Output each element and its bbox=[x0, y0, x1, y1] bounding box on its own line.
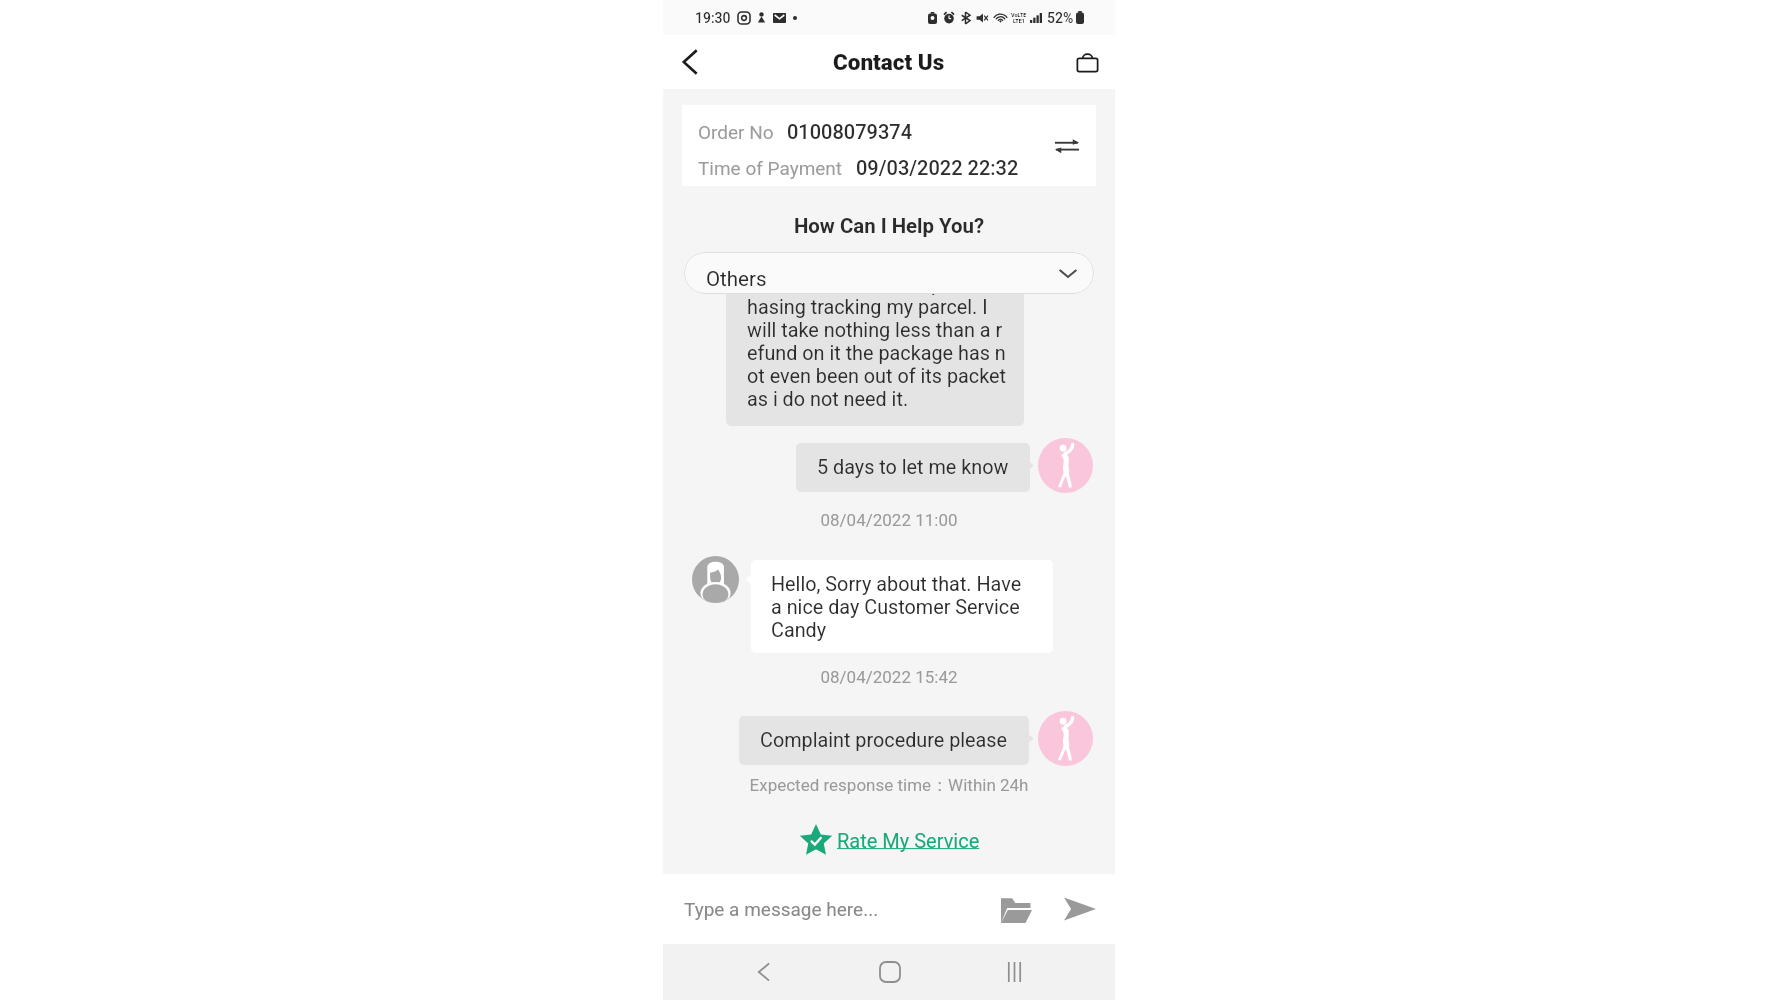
staticText: Type a message here... bbox=[684, 898, 879, 920]
staticText: 09/03/2022 22:32 bbox=[856, 156, 1019, 179]
button[interactable]: Send bbox=[1058, 887, 1102, 931]
button[interactable]: Back bbox=[668, 40, 712, 84]
staticText: issue is i am still not purc hasing trac… bbox=[747, 273, 1006, 411]
staticText: Order No bbox=[698, 121, 774, 143]
button[interactable]: Rate My Service bbox=[799, 823, 980, 857]
button[interactable]: Customer service agent bbox=[692, 556, 739, 603]
button[interactable]: Recent apps bbox=[952, 944, 1077, 1000]
button[interactable]: Attach file bbox=[992, 885, 1040, 933]
staticText: LTE1 bbox=[1013, 18, 1026, 24]
button[interactable]: Complaint procedure please bbox=[739, 716, 1029, 765]
button[interactable]: Switch order bbox=[1050, 129, 1084, 163]
button[interactable]: Shopping bag bbox=[1065, 40, 1109, 84]
button[interactable]: Others bbox=[684, 252, 1094, 294]
staticText: 5 days to let me know bbox=[817, 456, 1009, 479]
button[interactable]: issue is i am still not purc hasing trac… bbox=[726, 263, 1024, 426]
staticText: Complaint procedure please bbox=[760, 729, 1008, 752]
staticText: Expected response time：Within 24h bbox=[663, 775, 1115, 796]
staticText: 19:30 bbox=[695, 10, 731, 26]
staticText: 08/04/2022 15:42 bbox=[663, 667, 1115, 687]
staticText: Time of Payment bbox=[698, 157, 843, 179]
button[interactable]: My profile bbox=[1038, 711, 1093, 766]
staticText: Rate My Service bbox=[837, 829, 980, 852]
staticText: 52% bbox=[1047, 10, 1074, 26]
staticText: Hello, Sorry about that. Have a nice day… bbox=[771, 573, 1022, 642]
staticText: Others bbox=[706, 267, 767, 291]
button[interactable]: Hello, Sorry about that. Have a nice day… bbox=[751, 560, 1053, 653]
button[interactable]: My profile bbox=[1038, 438, 1093, 493]
staticText: VoLTE bbox=[1011, 12, 1027, 18]
button[interactable]: Home bbox=[827, 944, 952, 1000]
button[interactable]: Type a message here... bbox=[684, 874, 992, 944]
button[interactable]: Order No bbox=[682, 105, 1096, 186]
button[interactable]: 5 days to let me know bbox=[796, 443, 1030, 492]
button[interactable]: Back bbox=[701, 944, 827, 1000]
staticText: Contact Us bbox=[833, 49, 945, 75]
staticText: 08/04/2022 11:00 bbox=[663, 510, 1115, 530]
staticText: How Can I Help You? bbox=[663, 214, 1115, 238]
staticText: 01008079374 bbox=[787, 120, 913, 143]
